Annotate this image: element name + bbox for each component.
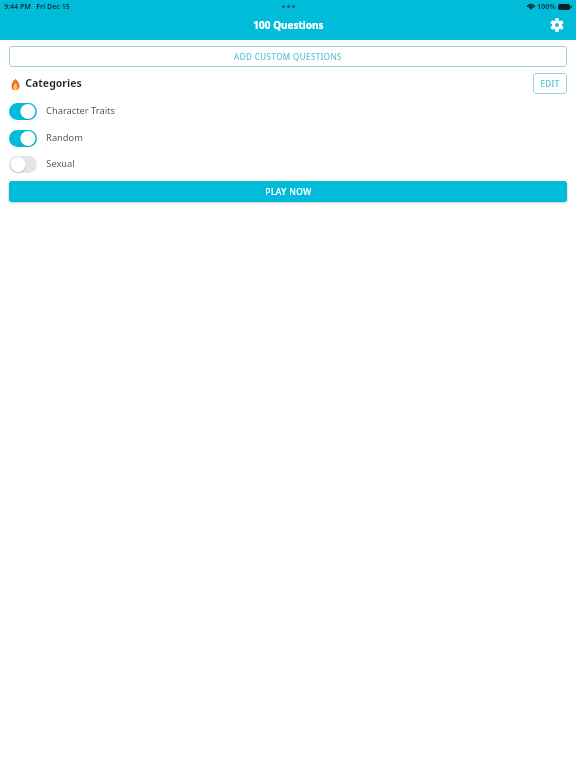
- staticText: Character Traits: [46, 104, 115, 117]
- staticText: ADD CUSTOM QUESTIONS: [234, 51, 342, 62]
- button[interactable]: Sexual: [9, 152, 567, 177]
- button[interactable]: Character Traits: [9, 99, 567, 124]
- staticText: Fri Dec 15: [36, 2, 70, 12]
- button[interactable]: EDIT: [533, 73, 567, 94]
- button[interactable]: Random: [9, 126, 567, 151]
- button[interactable]: PLAY NOW: [9, 181, 567, 202]
- staticText: 100 Questions: [253, 18, 324, 32]
- staticText: EDIT: [540, 78, 560, 89]
- staticText: Categories: [25, 76, 82, 90]
- button[interactable]: ADD CUSTOM QUESTIONS: [9, 46, 567, 67]
- staticText: Sexual: [46, 157, 75, 170]
- staticText: Random: [46, 131, 83, 144]
- staticText: PLAY NOW: [265, 186, 312, 198]
- staticText: 9:44 PM: [4, 2, 31, 12]
- button[interactable]: Settings: [546, 16, 568, 38]
- staticText: 100%: [537, 2, 556, 12]
